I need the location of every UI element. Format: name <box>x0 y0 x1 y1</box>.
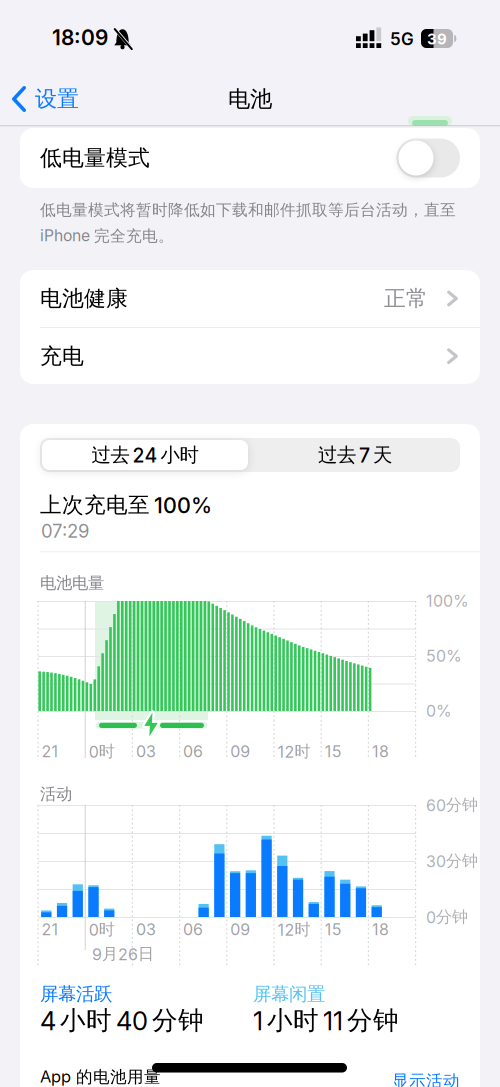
staticText: 06 <box>183 920 203 939</box>
staticText: 电池电量 <box>40 573 104 593</box>
staticText: 0分钟 <box>426 907 468 927</box>
button[interactable]: 过去 24 小时 <box>40 438 250 472</box>
staticText: 21 <box>41 742 58 761</box>
staticText: 03 <box>136 742 156 761</box>
staticText: 07:29 <box>41 520 89 542</box>
staticText: 09 <box>230 742 250 761</box>
staticText: 电池 <box>228 85 272 113</box>
staticText: 0% <box>426 701 452 721</box>
staticText: 屏幕闲置 <box>253 982 325 1006</box>
staticText: App 的电池用量 <box>40 1067 161 1087</box>
staticText: 上次充电至 100% <box>40 491 212 519</box>
staticText: 03 <box>136 920 156 939</box>
button[interactable]: 低电量模式开关 <box>20 128 480 188</box>
staticText: 活动 <box>40 784 72 804</box>
staticText: 18 <box>372 742 389 761</box>
staticText: 5G <box>390 29 414 49</box>
staticText: 21 <box>41 920 58 939</box>
staticText: 12时 <box>277 919 310 940</box>
staticText: 电池健康 <box>40 285 128 312</box>
staticText: 屏幕活跃 <box>40 982 112 1006</box>
staticText: 低电量模式 <box>40 144 150 172</box>
staticText: 过去 7 天 <box>318 443 392 467</box>
button[interactable]: 电池健康 <box>20 270 480 327</box>
button[interactable]: 显示活动 <box>340 1070 460 1087</box>
button[interactable]: 返回设置 <box>12 77 79 121</box>
staticText: 15 <box>325 920 342 939</box>
button[interactable]: 过去 7 天 <box>250 438 460 472</box>
staticText: 显示活动 <box>392 1071 460 1087</box>
staticText: 39 <box>427 30 447 48</box>
staticText: 15 <box>325 742 342 761</box>
staticText: 过去 24 小时 <box>91 443 198 467</box>
staticText: 18 <box>372 920 389 939</box>
staticText: 9月26日 <box>92 944 154 964</box>
staticText: 正常 <box>384 285 428 312</box>
staticText: 60分钟 <box>426 795 478 815</box>
staticText: 18:09 <box>52 25 108 50</box>
staticText: 4 小时 40 分钟 <box>40 1004 204 1036</box>
button[interactable]: 充电 <box>20 328 480 385</box>
staticText: 0时 <box>89 741 115 762</box>
staticText: 09 <box>230 920 250 939</box>
staticText: 1 小时 11 分钟 <box>253 1004 399 1036</box>
staticText: 100% <box>426 591 469 611</box>
staticText: 06 <box>183 742 203 761</box>
staticText: 0时 <box>89 919 115 940</box>
staticText: 充电 <box>40 342 84 370</box>
staticText: iPhone 完全充电。 <box>40 226 174 246</box>
staticText: 12时 <box>277 741 310 762</box>
staticText: 低电量模式将暂时降低如下载和邮件抓取等后台活动，直至 <box>40 200 456 220</box>
staticText: 50% <box>426 646 462 666</box>
staticText: 设置 <box>35 85 79 113</box>
staticText: 30分钟 <box>426 851 478 871</box>
